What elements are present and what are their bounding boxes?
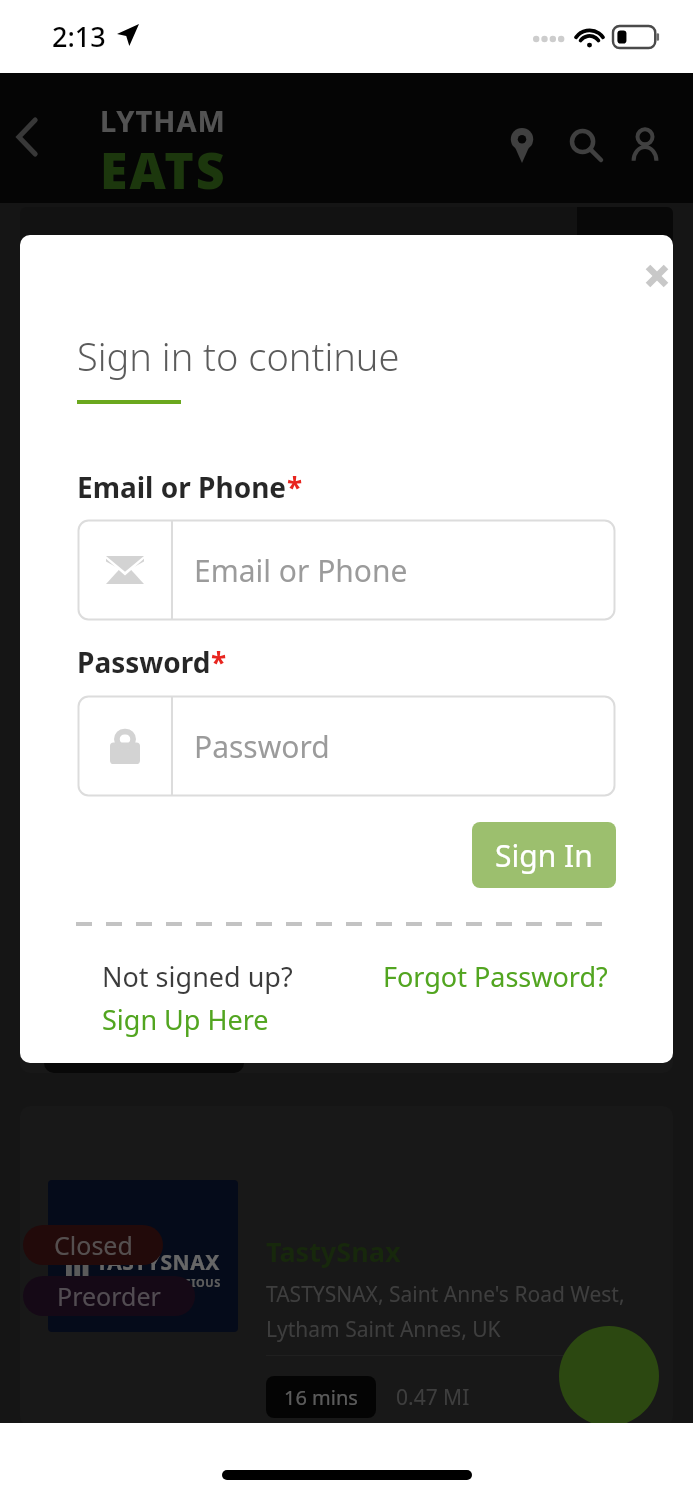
staticText: LYTHAM [100,101,226,140]
staticText: EATS [100,136,227,204]
staticText: 2:13 [52,18,106,55]
staticText: Not signed up? [102,958,293,995]
button[interactable]: Filter [559,1326,659,1426]
staticText: Email or Phone [194,550,408,591]
staticText: Forgot Password? [383,958,608,995]
staticText: TastySnax [266,1233,401,1270]
staticText: Password [77,643,211,681]
button[interactable]: NH-7, Sector 3, Panchkula, Haryana 13410… [20,207,673,283]
staticText: Preorder [57,1279,161,1313]
staticText: Sign In [495,835,593,876]
button[interactable]: Email or Phone [78,520,615,620]
staticText: * [287,468,303,506]
staticText: TASTYSNAX [96,1248,220,1277]
button[interactable] [20,373,673,1073]
staticText: Password [194,726,330,767]
staticText: Email or Phone [77,468,287,506]
staticText: 16 mins [284,1384,358,1411]
staticText: Sign Up Here [102,1001,269,1038]
button[interactable]: Locate me [577,207,673,283]
button[interactable]: Sign Up Here [102,995,269,1032]
button[interactable]: Close [632,251,673,301]
staticText: HEALTHY&DELICIOUS [94,1275,221,1290]
button[interactable]: Password [78,696,615,796]
staticText: Sign in to continue [77,330,400,382]
staticText: TASTYSNAX, Saint Anne's Road West, Lytha… [266,1280,648,1343]
staticText: Closed [54,1228,133,1262]
button[interactable]: Forgot Password? [383,958,608,995]
staticText: * [211,643,227,681]
staticText: 0.47 MI [396,1383,470,1412]
button[interactable] [20,1106,673,1426]
button[interactable]: Sign In [472,822,616,888]
staticText: NH-7, Sector 3, Panchkula, Haryana 13410… [38,229,566,264]
